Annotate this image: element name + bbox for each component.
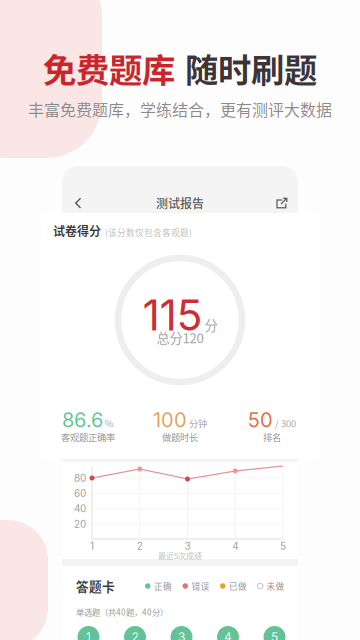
staticText: %	[105, 416, 114, 430]
staticText: 分钟	[189, 416, 207, 430]
staticText: 100	[153, 408, 187, 432]
staticText: 60	[74, 487, 86, 499]
staticText: 总分120	[156, 328, 203, 347]
staticText: 2	[131, 630, 138, 640]
staticText: 试卷得分	[53, 222, 101, 239]
staticText: 测试报告	[156, 194, 204, 212]
staticText: 3	[178, 630, 185, 640]
staticText: 20	[74, 518, 86, 530]
staticText: 2	[137, 540, 143, 552]
button[interactable]: 1	[77, 626, 124, 640]
staticText: 1	[90, 540, 94, 552]
button[interactable]: Back	[62, 193, 94, 213]
staticText: 正确	[154, 580, 172, 592]
staticText: 5	[271, 630, 278, 640]
button[interactable]: 4	[217, 626, 263, 640]
staticText: 单选题（共40题，40分）	[76, 606, 168, 618]
button[interactable]: 5	[263, 626, 310, 640]
staticText: 未做	[266, 580, 284, 592]
staticText: 40	[74, 503, 86, 515]
staticText: 随时刷题	[185, 44, 317, 92]
staticText: 最近5次成绩	[158, 550, 202, 561]
button[interactable]: 2	[124, 626, 170, 640]
button[interactable]: Share	[266, 193, 298, 213]
staticText: 排名	[263, 430, 281, 444]
staticText: 86.6	[62, 408, 103, 432]
staticText: 分	[204, 315, 217, 334]
staticText: 免费题库	[43, 44, 175, 92]
staticText: 3	[184, 540, 190, 552]
staticText: 115	[142, 289, 202, 341]
button[interactable]: 3	[170, 626, 217, 640]
staticText: 80	[74, 472, 86, 484]
staticText: 5	[280, 540, 286, 552]
staticText: / 300	[275, 416, 296, 430]
staticText: (该分数仅包含客观题)	[105, 226, 192, 238]
staticText: 客观题正确率	[61, 430, 115, 444]
staticText: 做题时长	[162, 430, 198, 444]
staticText: 答题卡	[76, 577, 115, 595]
staticText: 4	[224, 630, 232, 640]
staticText: 丰富免费题库，学练结合，更有测评大数据	[28, 97, 332, 121]
staticText: 错误	[191, 580, 209, 592]
staticText: 4	[232, 540, 238, 552]
staticText: 1	[86, 630, 91, 640]
staticText: 50	[248, 408, 273, 432]
staticText: 已做	[229, 580, 247, 592]
